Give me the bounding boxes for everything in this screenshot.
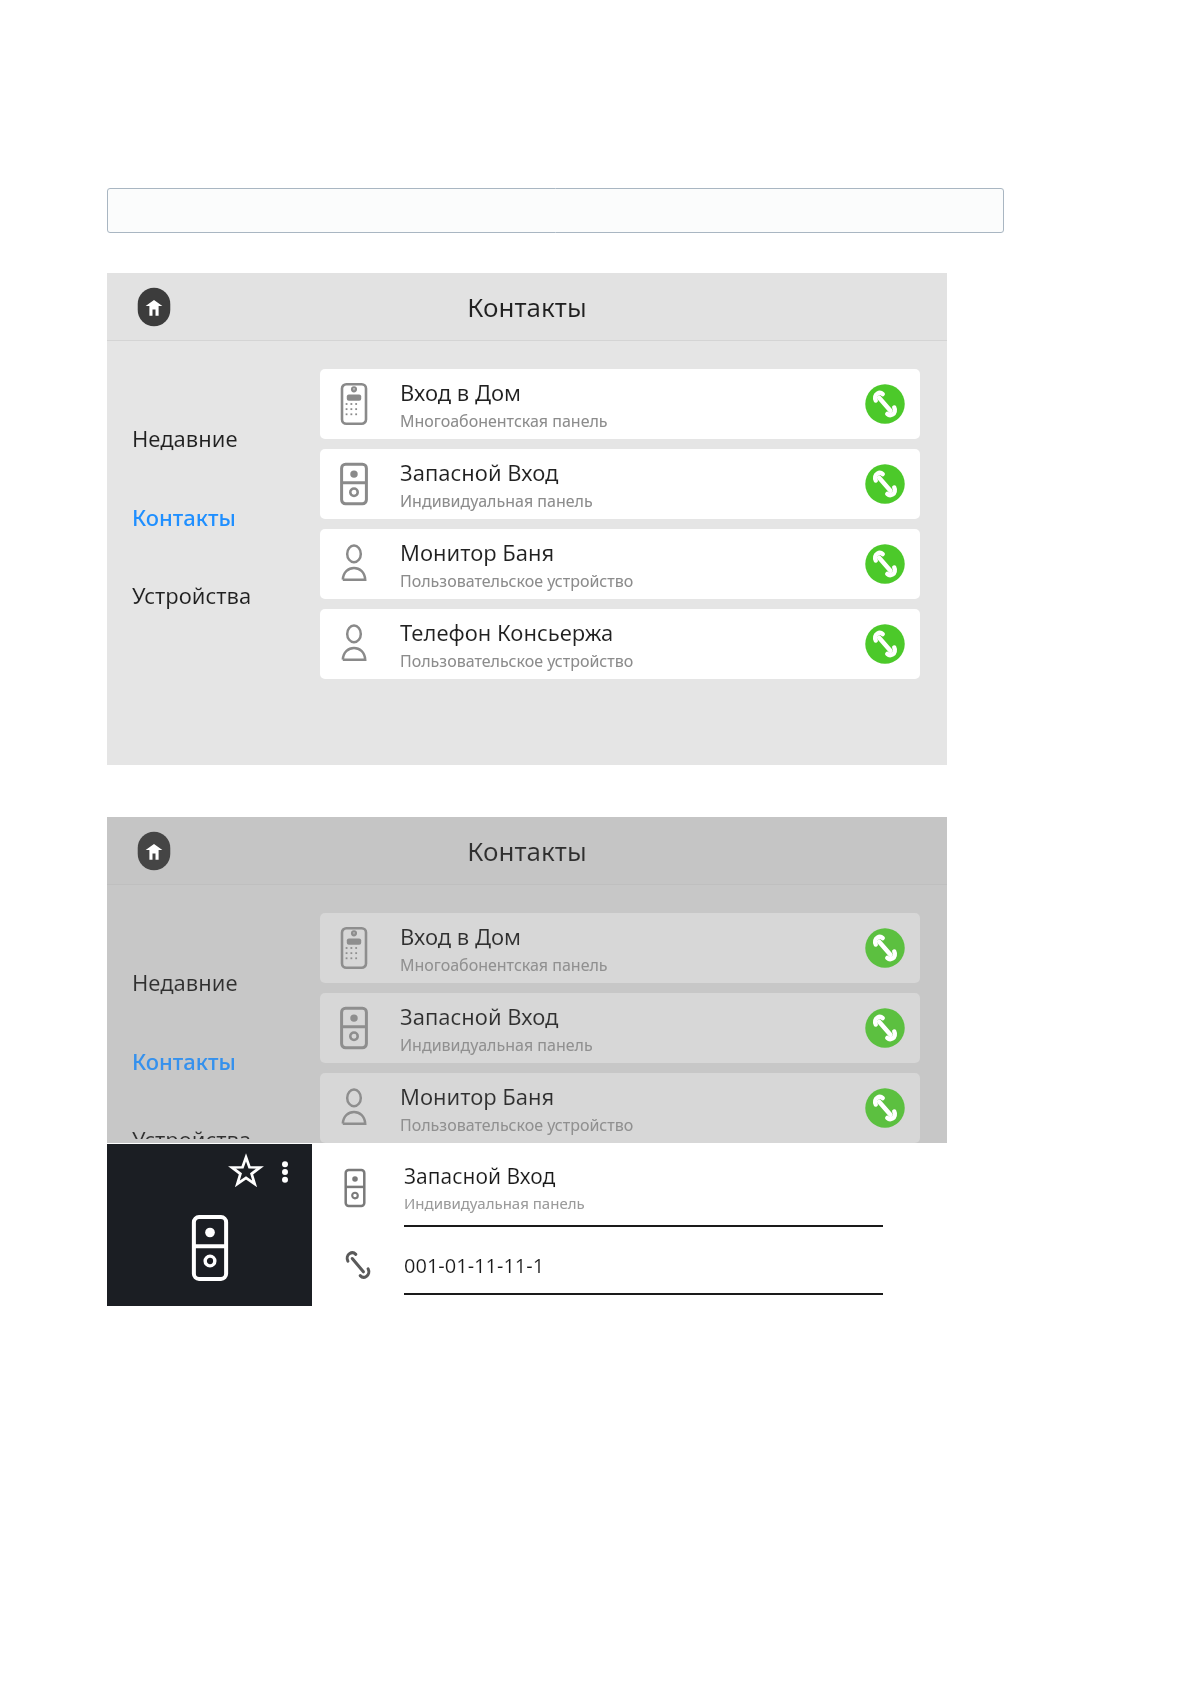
staticText: Пользовательское устройство <box>400 1114 634 1136</box>
button[interactable]: Контакты <box>107 498 320 536</box>
staticText: Телефон Консьержа <box>400 617 614 647</box>
button[interactable]: Запасной Вход <box>320 993 920 1063</box>
staticText: Контакты <box>467 833 587 868</box>
staticText: Контакты <box>467 289 587 324</box>
button[interactable]: More options <box>272 1159 298 1185</box>
staticText: Монитор Баня <box>400 1081 555 1111</box>
button[interactable]: Монитор Баня <box>320 529 920 599</box>
button[interactable]: Вход в Дом <box>320 369 920 439</box>
button[interactable]: Контакты <box>107 1042 320 1080</box>
staticText: Вход в Дом <box>400 921 521 951</box>
staticText: Индивидуальная панель <box>400 490 593 512</box>
staticText: Недавние <box>132 967 238 997</box>
staticText: Пользовательское устройство <box>400 570 634 592</box>
staticText: Запасной Вход <box>400 1001 559 1031</box>
staticText: Недавние <box>132 423 238 453</box>
staticText: Контакты <box>132 502 236 532</box>
staticText: Запасной Вход <box>400 457 559 487</box>
button[interactable]: Недавние <box>107 963 320 1001</box>
button[interactable]: Недавние <box>107 419 320 457</box>
staticText: Индивидуальная панель <box>404 1193 585 1213</box>
button[interactable]: Вход в Дом <box>320 913 920 983</box>
staticText: Устройства <box>132 1124 252 1139</box>
button[interactable]: Телефон Консьержа <box>320 609 920 679</box>
button[interactable]: Запасной Вход <box>320 449 920 519</box>
button[interactable]: Home <box>132 285 176 329</box>
staticText: Запасной Вход <box>404 1162 556 1191</box>
button[interactable]: Call <box>864 1007 906 1049</box>
staticText: Многоабонентская панель <box>400 410 608 432</box>
staticText: Многоабонентская панель <box>400 954 608 976</box>
staticText: Вход в Дом <box>400 377 521 407</box>
button[interactable]: Home <box>132 829 176 873</box>
button[interactable]: Call <box>864 1087 906 1129</box>
button[interactable]: Устройства <box>107 1120 320 1143</box>
staticText: Пользовательское устройство <box>400 650 634 672</box>
staticText: Индивидуальная панель <box>400 1034 593 1056</box>
button[interactable]: Call <box>864 383 906 425</box>
staticText: Контакты <box>132 1046 236 1076</box>
button[interactable]: Устройства <box>107 576 320 614</box>
button[interactable]: Call <box>864 623 906 665</box>
button[interactable]: Call <box>864 927 906 969</box>
button[interactable]: Call <box>864 463 906 505</box>
button[interactable]: Call <box>864 543 906 585</box>
button[interactable]: Монитор Баня <box>320 1073 920 1143</box>
staticText: Устройства <box>132 580 252 610</box>
button[interactable]: Favorite <box>230 1156 262 1188</box>
staticText: Монитор Баня <box>400 537 555 567</box>
staticText: 001-01-11-11-1 <box>404 1252 545 1279</box>
